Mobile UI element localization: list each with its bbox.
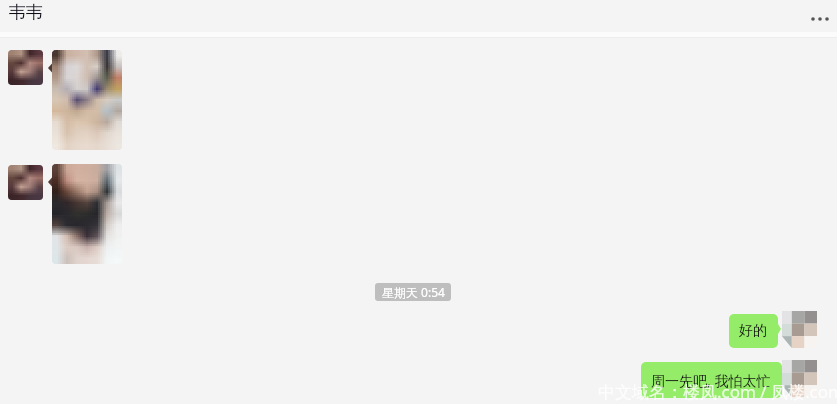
- button[interactable]: Contact avatar: [8, 50, 43, 85]
- button[interactable]: Photo message: [52, 164, 122, 264]
- staticText: 星期天 0:54: [382, 284, 445, 300]
- button[interactable]: 好的: [729, 314, 778, 348]
- button[interactable]: Contact avatar: [8, 165, 43, 200]
- button[interactable]: 周一先吧, 我怕太忙: [641, 362, 782, 398]
- button[interactable]: My avatar: [782, 311, 817, 348]
- staticText: 韦韦: [9, 2, 43, 23]
- staticText: 中文域名：楼凤.com / 凤楼.com: [598, 380, 837, 403]
- button[interactable]: My avatar: [782, 360, 817, 397]
- button[interactable]: Photo message: [52, 50, 122, 150]
- staticText: 好的: [739, 322, 767, 340]
- staticText: 周一先吧, 我怕太忙: [651, 371, 771, 390]
- button[interactable]: More options: [805, 1, 835, 31]
